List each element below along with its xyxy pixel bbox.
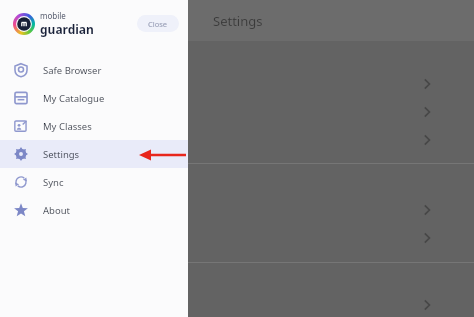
button[interactable]: Open setting: [418, 296, 436, 314]
staticText: Settings: [43, 148, 80, 161]
staticText: guardian: [40, 21, 94, 37]
button[interactable]: Open setting: [418, 229, 436, 247]
button[interactable]: Open setting: [418, 103, 436, 121]
staticText: Settings: [213, 12, 263, 30]
staticText: mobile: [40, 10, 66, 21]
staticText: Sync: [43, 176, 64, 189]
button[interactable]: My Classes: [0, 112, 188, 140]
staticText: My Catalogue: [43, 92, 105, 105]
button[interactable]: My Catalogue: [0, 84, 188, 112]
staticText: Safe Browser: [43, 64, 102, 77]
button[interactable]: Close: [137, 15, 179, 32]
button[interactable]: Open setting: [418, 201, 436, 219]
button[interactable]: Open setting: [418, 75, 436, 93]
staticText: My Classes: [43, 120, 92, 133]
staticText: About: [43, 204, 70, 217]
button[interactable]: About: [0, 196, 188, 224]
button[interactable]: Sync: [0, 168, 188, 196]
button[interactable]: Open setting: [418, 131, 436, 149]
button[interactable]: Settings: [0, 140, 188, 168]
staticText: Close: [148, 19, 168, 29]
button[interactable]: Safe Browser: [0, 56, 188, 84]
